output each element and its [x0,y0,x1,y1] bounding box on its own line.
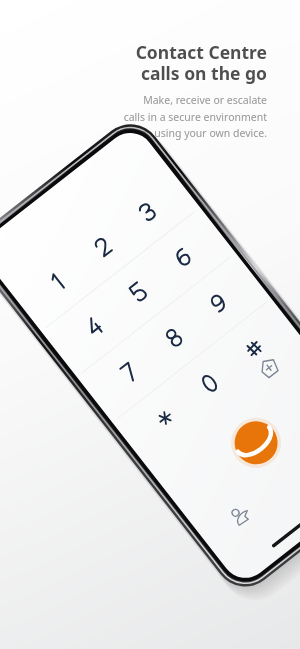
staticText: Contact Centre calls on the go [135,40,267,85]
staticText: Make, receive or escalate calls in a sec… [123,93,267,140]
button[interactable]: Phone showing dialler screen [0,0,300,649]
